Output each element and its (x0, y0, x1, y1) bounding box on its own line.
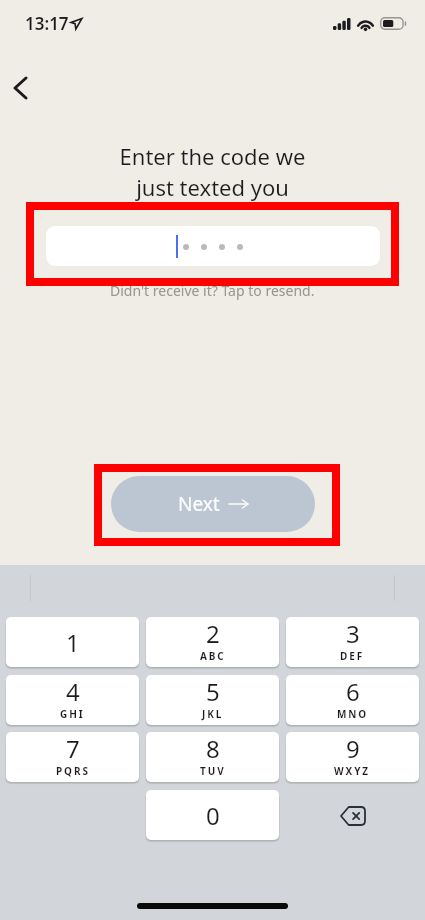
button[interactable]: 7 (6, 732, 139, 782)
staticText: MNO (337, 707, 369, 721)
staticText: GHI (60, 707, 85, 721)
staticText: 2 (206, 617, 220, 650)
staticText: 5 (206, 675, 220, 708)
staticText: PQRS (56, 764, 90, 778)
button[interactable]: 8 (146, 732, 279, 782)
button[interactable]: 4 (6, 675, 139, 725)
button[interactable]: Next (111, 476, 315, 532)
button[interactable]: 6 (286, 675, 419, 725)
staticText: Didn't receive it? Tap to resend. (110, 281, 315, 300)
staticText: 6 (346, 675, 360, 708)
button[interactable]: Didn't receive it? Tap to resend. (104, 279, 321, 302)
button[interactable]: 0 (146, 790, 279, 840)
button[interactable]: Back (0, 67, 44, 109)
staticText: ABC (200, 649, 226, 663)
staticText: 13:17 (25, 12, 69, 35)
button[interactable]: 9 (286, 732, 419, 782)
staticText: 0 (206, 799, 220, 832)
staticText: 3 (346, 617, 360, 650)
staticText: 9 (346, 732, 360, 765)
staticText: TUV (200, 764, 226, 778)
button[interactable]: 5 (146, 675, 279, 725)
staticText: 4 (66, 675, 80, 708)
button[interactable] (46, 226, 380, 266)
staticText: 8 (206, 732, 220, 765)
staticText: 1 (66, 626, 80, 659)
button[interactable]: 2 (146, 617, 279, 667)
staticText: Enter the code we just texted you (0, 141, 425, 203)
staticText: DEF (340, 649, 365, 663)
button[interactable]: 3 (286, 617, 419, 667)
staticText: WXYZ (334, 764, 371, 778)
button[interactable]: Backspace (286, 790, 419, 842)
staticText: Next (178, 491, 220, 517)
staticText: JKL (202, 707, 224, 721)
button[interactable]: 1 (6, 617, 139, 667)
staticText: 7 (66, 732, 80, 765)
